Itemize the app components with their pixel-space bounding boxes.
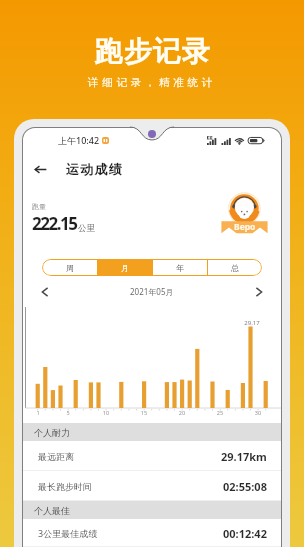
staticText: 222.15: [32, 212, 77, 235]
button[interactable]: Back: [29, 158, 51, 180]
button[interactable]: 周: [42, 259, 97, 276]
staticText: 年: [176, 263, 184, 273]
button[interactable]: Next month: [250, 283, 268, 301]
button[interactable]: 年: [153, 259, 207, 276]
staticText: 15: [140, 409, 148, 416]
staticText: 29.17km: [221, 449, 267, 464]
staticText: 个人耐力: [34, 427, 70, 438]
button[interactable]: 总: [208, 259, 262, 276]
staticText: 最远距离: [38, 451, 74, 462]
button[interactable]: 最远距离: [23, 441, 281, 471]
staticText: 5: [64, 409, 72, 416]
staticText: 上午10:42: [58, 134, 100, 146]
staticText: 25: [216, 409, 224, 416]
staticText: 公里: [78, 223, 95, 234]
staticText: 3公里最佳成绩: [38, 527, 98, 539]
staticText: 1: [34, 409, 42, 416]
staticText: 29.17: [242, 319, 262, 327]
button[interactable]: Previous month: [36, 283, 54, 301]
staticText: 2021年05月: [130, 286, 174, 297]
staticText: 最长跑步时间: [38, 481, 92, 492]
staticText: 周: [66, 263, 74, 273]
button[interactable]: 月: [98, 259, 152, 276]
staticText: 20: [178, 409, 186, 416]
staticText: 详细记录，精准统计: [88, 76, 216, 89]
staticText: 运动成绩: [66, 161, 124, 177]
staticText: 02:55:08: [223, 479, 267, 494]
staticText: 30: [254, 409, 262, 416]
staticText: 个人最佳: [34, 505, 70, 516]
staticText: 跑步记录: [94, 34, 210, 69]
staticText: 跑量: [32, 202, 46, 211]
staticText: 总: [231, 263, 239, 273]
button[interactable]: 最长跑步时间: [23, 471, 281, 501]
staticText: Bepo: [234, 221, 256, 233]
staticText: 10: [102, 409, 110, 416]
staticText: 月: [121, 263, 129, 273]
staticText: 00:12:42: [223, 526, 267, 541]
button[interactable]: 3公里最佳成绩: [23, 519, 281, 547]
